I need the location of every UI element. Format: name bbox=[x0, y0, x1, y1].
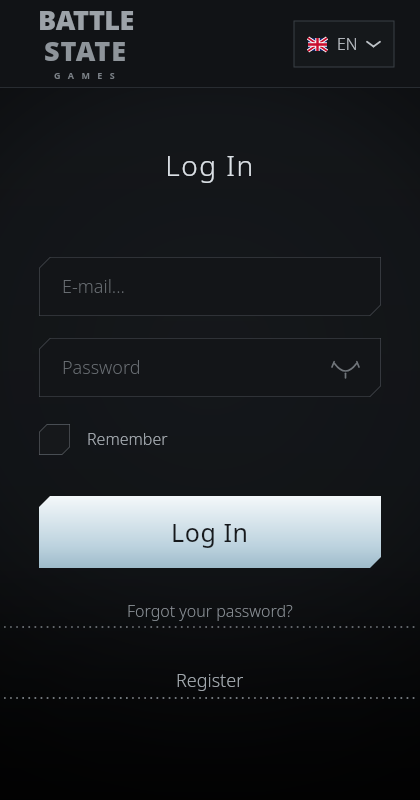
staticText: Register bbox=[176, 668, 244, 693]
staticText: E-mail... bbox=[62, 274, 125, 299]
button[interactable]: Forgot your password? bbox=[0, 598, 420, 630]
button[interactable]: Show password bbox=[327, 350, 363, 386]
button[interactable]: Battle State Games bbox=[38, 1, 134, 87]
button[interactable]: Language English bbox=[294, 21, 394, 67]
staticText: Log In bbox=[171, 515, 249, 549]
button[interactable]: Password bbox=[39, 338, 381, 397]
staticText: G A M E S bbox=[54, 69, 118, 81]
staticText: Remember bbox=[87, 428, 168, 450]
button[interactable]: Remember bbox=[39, 422, 168, 456]
button[interactable]: Log In bbox=[39, 496, 381, 568]
staticText: Log In bbox=[0, 146, 420, 184]
staticText: Password bbox=[62, 355, 141, 380]
staticText: EN bbox=[337, 33, 358, 55]
staticText: BATTLE bbox=[38, 1, 134, 38]
staticText: STATE bbox=[44, 32, 128, 69]
button[interactable]: E-mail... bbox=[39, 257, 381, 316]
button[interactable]: Register bbox=[0, 666, 420, 701]
staticText: Forgot your password? bbox=[127, 600, 293, 622]
